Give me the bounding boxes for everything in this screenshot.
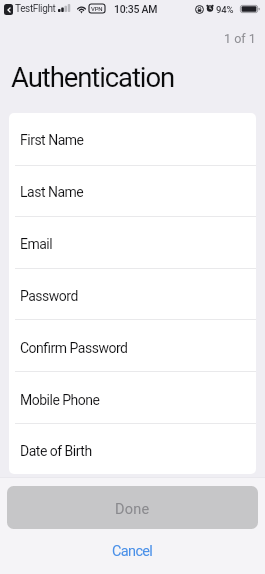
staticText: 1 of 1: [224, 31, 256, 46]
staticText: Email: [20, 236, 53, 252]
button[interactable]: Mobile Phone: [9, 373, 256, 425]
button[interactable]: Done: [7, 486, 258, 529]
staticText: VPN: [91, 5, 103, 12]
staticText: 10:35 AM: [114, 3, 158, 15]
button[interactable]: Back to TestFlight: [4, 4, 13, 15]
staticText: TestFlight: [15, 3, 56, 15]
staticText: Confirm Password: [20, 340, 128, 356]
staticText: Last Name: [20, 184, 84, 200]
button[interactable]: Confirm Password: [9, 321, 256, 373]
staticText: First Name: [20, 132, 84, 148]
button[interactable]: Password: [9, 269, 256, 321]
staticText: Password: [20, 288, 78, 304]
button[interactable]: Cancel: [94, 538, 171, 565]
button[interactable]: Last Name: [9, 165, 256, 217]
button[interactable]: First Name: [9, 113, 256, 165]
button[interactable]: Email: [9, 217, 256, 269]
staticText: Done: [115, 501, 150, 518]
staticText: Authentication: [11, 61, 175, 93]
staticText: Date of Birth: [20, 443, 92, 459]
button[interactable]: Date of Birth: [9, 425, 256, 474]
staticText: Mobile Phone: [20, 392, 100, 408]
staticText: 94%: [216, 4, 234, 15]
